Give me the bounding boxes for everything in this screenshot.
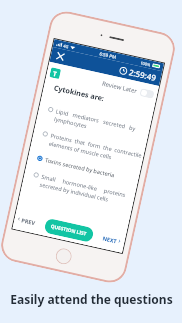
staticText: 100% (140, 60, 152, 68)
button[interactable]: NEXT (102, 232, 122, 246)
staticText: Cytokines are: (53, 82, 106, 103)
button[interactable]: ‹ (17, 214, 36, 227)
staticText: › (117, 236, 122, 246)
staticText: T (52, 69, 58, 78)
button[interactable]: QUESTION LIST (43, 218, 95, 243)
staticText: Easily attend the questions (10, 291, 173, 307)
staticText: 2:59:49 (128, 66, 158, 83)
staticText: Lipid mediators secreted by lymphocytes (53, 107, 150, 143)
staticText: Toxins secreted by bacteria (44, 156, 115, 179)
button[interactable]: Close (54, 50, 67, 63)
staticText: 6:59 PM (99, 50, 117, 60)
staticText: 4G (63, 43, 70, 49)
staticText: Review Later (101, 80, 138, 95)
button[interactable]: Small hormone-like proteins secreted by … (22, 169, 135, 209)
staticText: QUESTION LIST (50, 223, 88, 238)
staticText: Small hormone-like proteins secreted by … (39, 173, 135, 209)
button[interactable]: Proteins that form the contractile eleme… (31, 128, 144, 168)
button[interactable]: Review later toggle (139, 88, 155, 99)
staticText: ‹ (17, 214, 22, 224)
button[interactable]: Toxins secreted by bacteria (28, 152, 139, 185)
button[interactable]: Lipid mediators secreted by lymphocytes (37, 104, 150, 143)
staticText: Proteins that form the contractile eleme… (48, 132, 144, 168)
staticText: NEXT (102, 234, 118, 244)
staticText: PREV (21, 216, 36, 226)
